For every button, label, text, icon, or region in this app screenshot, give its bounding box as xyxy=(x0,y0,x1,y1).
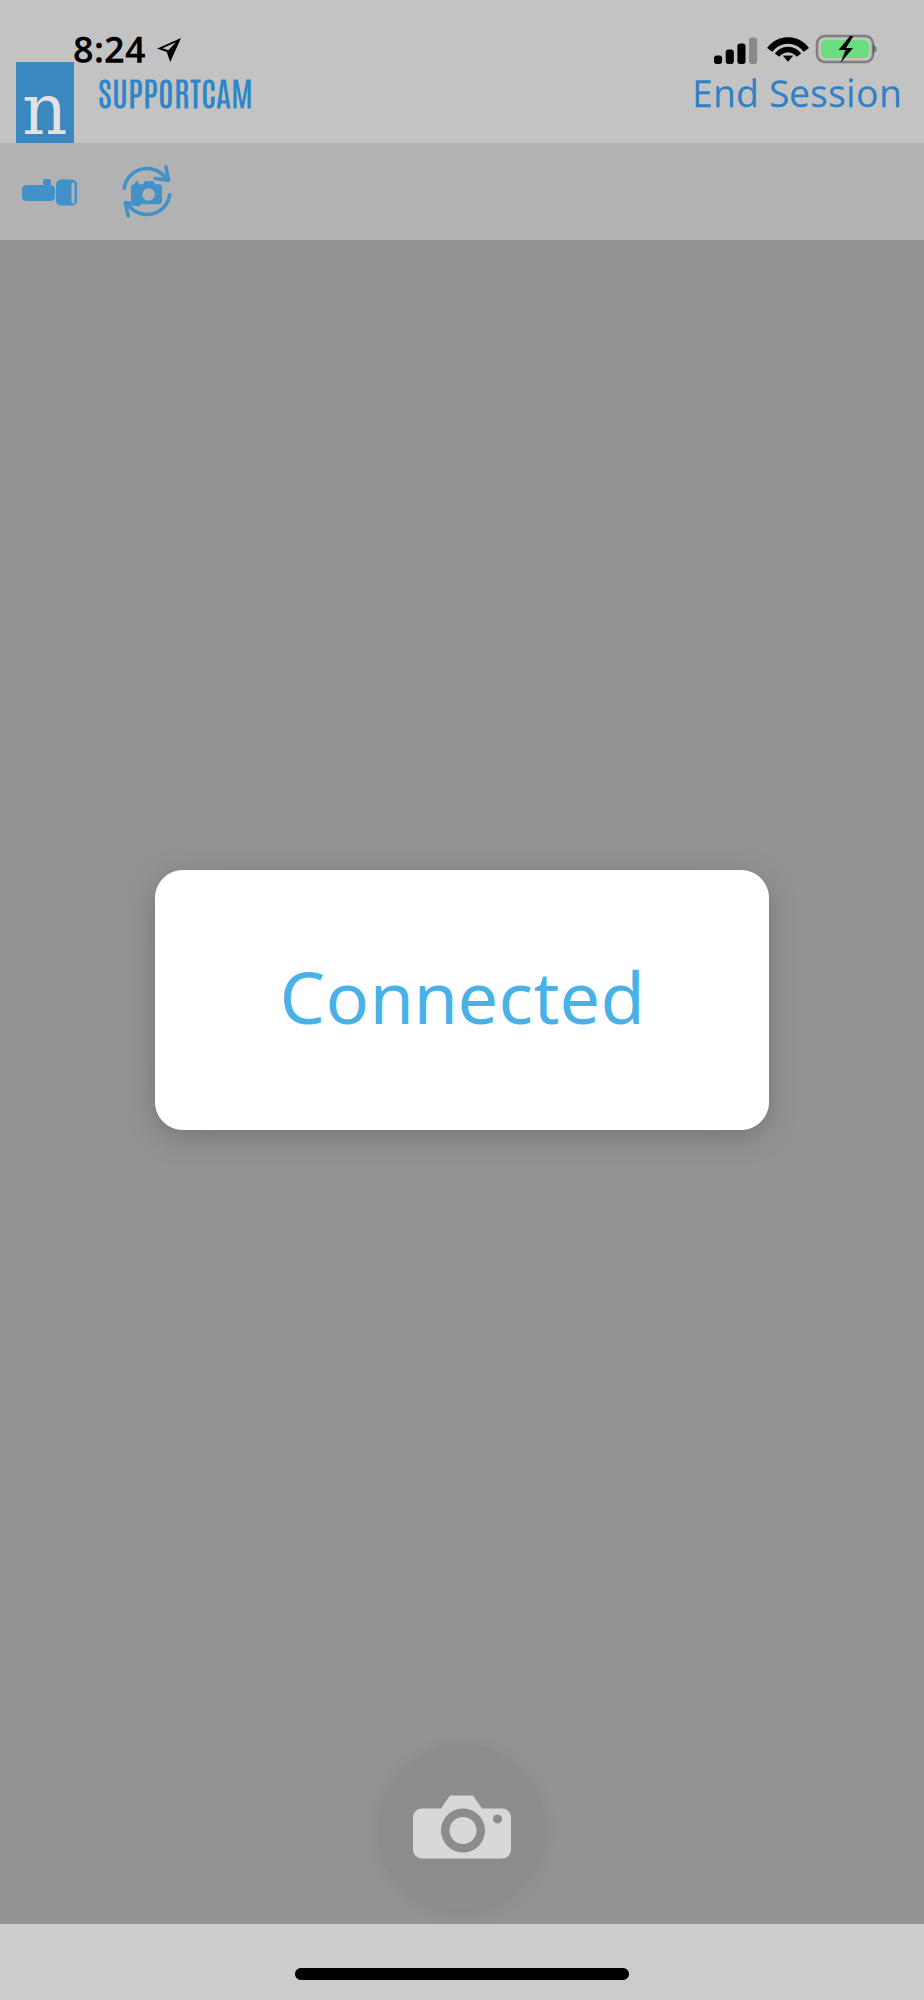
button[interactable]: End Session xyxy=(678,52,916,134)
staticText: End Session xyxy=(692,68,902,118)
staticText: n xyxy=(22,68,68,151)
staticText: Connected xyxy=(279,948,644,1044)
staticText: 8:24 xyxy=(73,25,146,73)
button[interactable]: n xyxy=(16,62,253,143)
staticText: SUPPORTCAM xyxy=(98,70,253,113)
button[interactable]: Switch camera xyxy=(98,155,196,228)
button[interactable]: Toggle flashlight xyxy=(0,157,99,228)
button[interactable]: Take photo xyxy=(371,1736,553,1918)
